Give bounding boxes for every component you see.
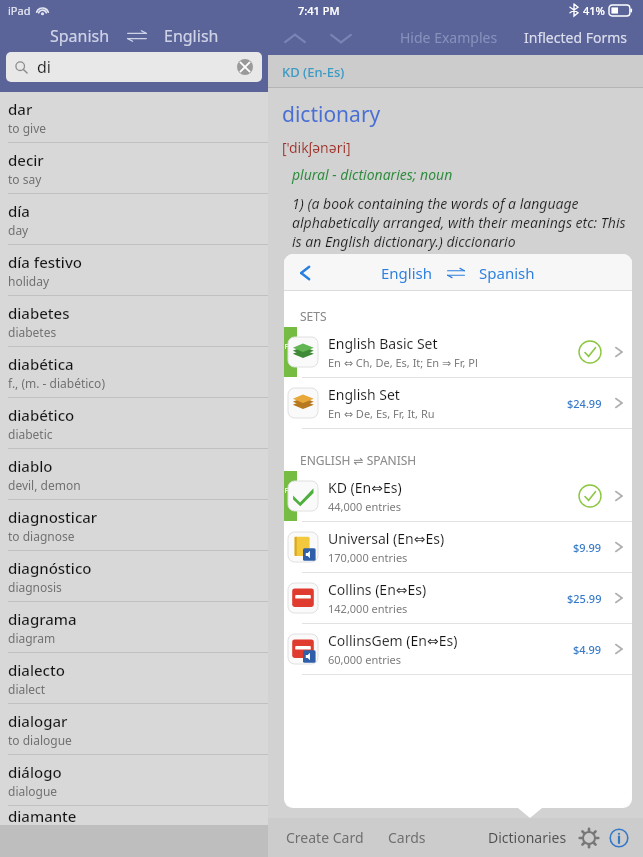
staticText: Dictionaries	[488, 828, 567, 847]
staticText: KD (En-Es)	[282, 63, 345, 81]
staticText: diabetes	[8, 303, 70, 323]
button[interactable]: Settings	[579, 828, 599, 848]
staticText: $25.99	[567, 591, 602, 606]
staticText: En ⇔ Ch, De, Es, It; En ⇒ Fr, Pl	[328, 355, 478, 370]
staticText: Collins (En⇔Es)	[328, 580, 427, 599]
staticText: Create Card	[286, 828, 364, 847]
staticText: English Set	[328, 385, 400, 404]
button[interactable]: di	[6, 52, 262, 82]
staticText: 60,000 entries	[328, 652, 402, 667]
staticText: diagnosis	[8, 579, 62, 595]
staticText: dialogue	[8, 783, 58, 799]
staticText: 170,000 entries	[328, 550, 408, 565]
button[interactable]: dar	[0, 92, 268, 142]
button[interactable]: decir	[0, 143, 268, 193]
staticText: diagrama	[8, 609, 77, 629]
staticText: dialogar	[8, 711, 68, 731]
staticText: Universal (En⇔Es)	[328, 529, 445, 548]
staticText: 41%	[583, 3, 605, 18]
button[interactable]: diagnosticar	[0, 500, 268, 550]
button[interactable]: Previous	[278, 24, 312, 52]
button[interactable]: English	[158, 25, 225, 47]
staticText: 1) (a book containing the words of a lan…	[292, 194, 633, 251]
button[interactable]: Dictionaries	[484, 822, 571, 853]
staticText: to say	[8, 171, 42, 187]
staticText: dar	[8, 99, 33, 119]
button[interactable]: diabético	[0, 398, 268, 448]
button[interactable]: diagnóstico	[0, 551, 268, 601]
staticText: Cards	[388, 828, 426, 847]
button[interactable]: Hide Examples	[394, 24, 504, 51]
staticText: 7:41 PM	[298, 3, 340, 18]
staticText: to give	[8, 120, 47, 136]
button[interactable]: diagrama	[0, 602, 268, 652]
button[interactable]: diabetes	[0, 296, 268, 346]
button[interactable]: Info	[609, 828, 629, 848]
staticText: diagnóstico	[8, 558, 92, 578]
button[interactable]: diabética	[0, 347, 268, 397]
staticText: decir	[8, 150, 44, 170]
button[interactable]: diablo	[0, 449, 268, 499]
staticText: day	[8, 222, 29, 238]
staticText: holiday	[8, 273, 50, 289]
button[interactable]: Spanish	[474, 263, 540, 283]
staticText: diálogo	[8, 762, 62, 782]
staticText: diamante	[8, 806, 77, 825]
staticText: diabético	[8, 405, 75, 425]
staticText: día	[8, 201, 30, 221]
staticText: Spanish	[479, 263, 535, 283]
button[interactable]: Collins (En⇔Es)	[284, 573, 632, 623]
staticText: $9.99	[573, 540, 602, 555]
button[interactable]: Universal (En⇔Es)	[284, 522, 632, 572]
staticText: En ⇔ De, Es, Fr, It, Ru	[328, 406, 435, 421]
staticText: f., (m. - diabético)	[8, 375, 105, 391]
staticText: diabetic	[8, 426, 53, 442]
staticText: $4.99	[573, 642, 602, 657]
staticText: Spanish	[50, 25, 110, 47]
button[interactable]: CollinsGem (En⇔Es)	[284, 624, 632, 674]
button[interactable]: FREE	[284, 471, 632, 521]
staticText: di	[37, 56, 51, 78]
staticText: to diagnose	[8, 528, 75, 544]
button[interactable]: Next	[324, 24, 358, 52]
staticText: dialect	[8, 681, 46, 697]
button[interactable]: English	[376, 263, 438, 283]
button[interactable]: FREE	[284, 327, 632, 377]
button[interactable]: dialecto	[0, 653, 268, 703]
staticText: ENGLISH ⇌ SPANISH	[300, 452, 417, 468]
staticText: English	[381, 263, 433, 283]
staticText: plural - dictionaries; noun	[292, 165, 453, 184]
staticText: $24.99	[567, 396, 602, 411]
button[interactable]: Back	[290, 258, 320, 288]
button[interactable]: Inflected Forms	[518, 24, 633, 51]
button[interactable]: día festivo	[0, 245, 268, 295]
button[interactable]: Swap languages	[126, 28, 148, 44]
button[interactable]: día	[0, 194, 268, 244]
staticText: dialecto	[8, 660, 65, 680]
staticText: dictionary	[282, 100, 381, 129]
button[interactable]: diálogo	[0, 755, 268, 805]
button[interactable]: dialogar	[0, 704, 268, 754]
staticText: KD (En⇔Es)	[328, 478, 402, 497]
button[interactable]: diamante	[0, 806, 268, 825]
staticText: devil, demon	[8, 477, 81, 493]
staticText: diagnosticar	[8, 507, 98, 527]
button[interactable]: Clear search	[237, 59, 253, 75]
button[interactable]: Spanish	[44, 25, 116, 47]
staticText: iPad	[8, 3, 31, 18]
staticText: English	[164, 25, 219, 47]
staticText: English Basic Set	[328, 334, 438, 353]
button[interactable]: Create Card	[282, 822, 368, 853]
button[interactable]: KD (En-Es)	[268, 55, 359, 88]
staticText: día festivo	[8, 252, 82, 272]
staticText: Hide Examples	[400, 28, 498, 47]
staticText: ['dikʃənəri]	[282, 138, 351, 157]
staticText: CollinsGem (En⇔Es)	[328, 631, 458, 650]
staticText: to dialogue	[8, 732, 72, 748]
button[interactable]: Swap languages	[446, 266, 466, 280]
staticText: 142,000 entries	[328, 601, 408, 616]
staticText: 2) (a book containing other information …	[292, 259, 630, 278]
staticText: SETS	[300, 308, 327, 324]
button[interactable]: English Set	[284, 378, 632, 428]
button[interactable]: Cards	[384, 822, 430, 853]
